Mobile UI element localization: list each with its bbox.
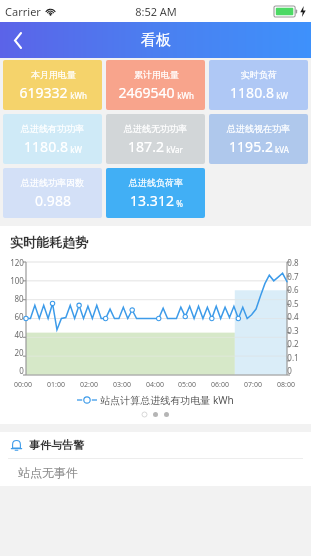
staticText: % (176, 198, 183, 209)
staticText: 187.2 (128, 137, 164, 156)
staticText: 0.988 (35, 191, 71, 210)
staticText: 实时能耗趋势 (10, 234, 88, 250)
staticText: 0.4 (287, 311, 299, 322)
staticText: 02:00 (80, 380, 98, 390)
button[interactable]: 站点无事件 (0, 459, 311, 486)
staticText: 40 (14, 329, 24, 340)
button[interactable]: 累计用电量 (106, 60, 205, 110)
button[interactable]: 总进线无功功率 (106, 114, 205, 164)
staticText: 0.8 (287, 257, 299, 268)
staticText: 100 (10, 275, 24, 286)
staticText: 00:00 (14, 380, 32, 390)
button[interactable]: Back (0, 22, 36, 58)
staticText: kWh (70, 90, 87, 101)
staticText: 01:00 (47, 380, 65, 390)
staticText: Carrier (5, 4, 41, 19)
staticText: 07:00 (244, 380, 262, 390)
button[interactable]: 本月用电量 (3, 60, 102, 110)
staticText: 2469540 (118, 83, 175, 102)
staticText: 看板 (141, 31, 171, 50)
staticText: 总进线有功功率 (21, 123, 84, 134)
staticText: 本月用电量 (31, 69, 76, 80)
staticText: 619332 (19, 83, 68, 102)
staticText: 0.1 (287, 352, 299, 363)
staticText: 20 (14, 347, 24, 358)
staticText: kW (276, 90, 288, 101)
staticText: 03:00 (113, 380, 131, 390)
staticText: 0.5 (287, 298, 299, 309)
button[interactable]: 总进线有功功率 (3, 114, 102, 164)
staticText: 站点计算总进线有功电量 kWh (100, 393, 234, 407)
staticText: 0.6 (287, 284, 299, 295)
button[interactable]: 总进线功率因数 (3, 168, 102, 218)
staticText: 总进线视在功率 (227, 123, 290, 134)
staticText: 60 (14, 311, 24, 322)
staticText: 0 (19, 365, 24, 376)
staticText: 1180.8 (24, 137, 68, 156)
staticText: 站点无事件 (18, 465, 78, 480)
staticText: 08:00 (277, 380, 295, 390)
staticText: 实时负荷 (241, 69, 277, 80)
staticText: kW (70, 144, 82, 155)
staticText: 04:00 (146, 380, 164, 390)
staticText: 0.3 (287, 325, 299, 336)
staticText: kVar (166, 144, 183, 155)
button[interactable]: 实时负荷 (209, 60, 308, 110)
staticText: 0.2 (287, 338, 299, 349)
staticText: 8:52 AM (135, 4, 177, 19)
staticText: kVA (275, 144, 289, 155)
staticText: 13.312 (130, 191, 174, 210)
staticText: 120 (10, 257, 24, 268)
staticText: 0.7 (287, 271, 299, 282)
staticText: 总进线功率因数 (21, 177, 84, 188)
staticText: 06:00 (211, 380, 229, 390)
button[interactable]: 总进线视在功率 (209, 114, 308, 164)
staticText: 事件与告警 (29, 438, 84, 452)
staticText: 总进线无功功率 (124, 123, 187, 134)
staticText: 80 (14, 293, 24, 304)
staticText: 1180.8 (230, 83, 274, 102)
staticText: 总进线负荷率 (129, 177, 183, 188)
staticText: 1195.2 (229, 137, 273, 156)
staticText: 累计用电量 (134, 69, 179, 80)
button[interactable]: 总进线负荷率 (106, 168, 205, 218)
staticText: 05:00 (178, 380, 196, 390)
staticText: kWh (177, 90, 194, 101)
staticText: 0 (287, 365, 292, 376)
